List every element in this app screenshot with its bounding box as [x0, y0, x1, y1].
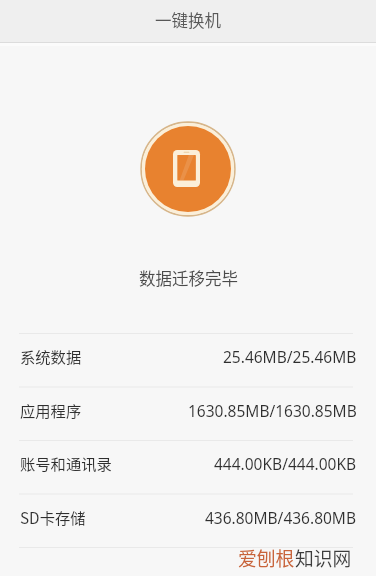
staticText: 444.00KB/444.00KB	[214, 453, 357, 474]
staticText: 25.46MB/25.46MB	[223, 346, 357, 367]
button[interactable]: 系统数据	[0, 333, 376, 387]
button[interactable]: SD卡存储	[0, 494, 376, 548]
staticText: 系统数据	[20, 345, 82, 367]
staticText: 应用程序	[20, 399, 82, 421]
staticText: 数据迁移完毕	[139, 266, 238, 290]
button[interactable]: 应用程序	[0, 387, 376, 441]
staticText: 436.80MB/436.80MB	[205, 507, 357, 528]
staticText: 一键换机	[155, 8, 221, 32]
staticText: 知识网	[295, 544, 352, 571]
button[interactable]: 账号和通讯录	[0, 440, 376, 494]
staticText: SD卡存储	[20, 506, 86, 528]
staticText: 1630.85MB/1630.85MB	[188, 400, 357, 421]
staticText: 爱刨根	[238, 544, 295, 571]
staticText: 账号和通讯录	[20, 452, 112, 474]
